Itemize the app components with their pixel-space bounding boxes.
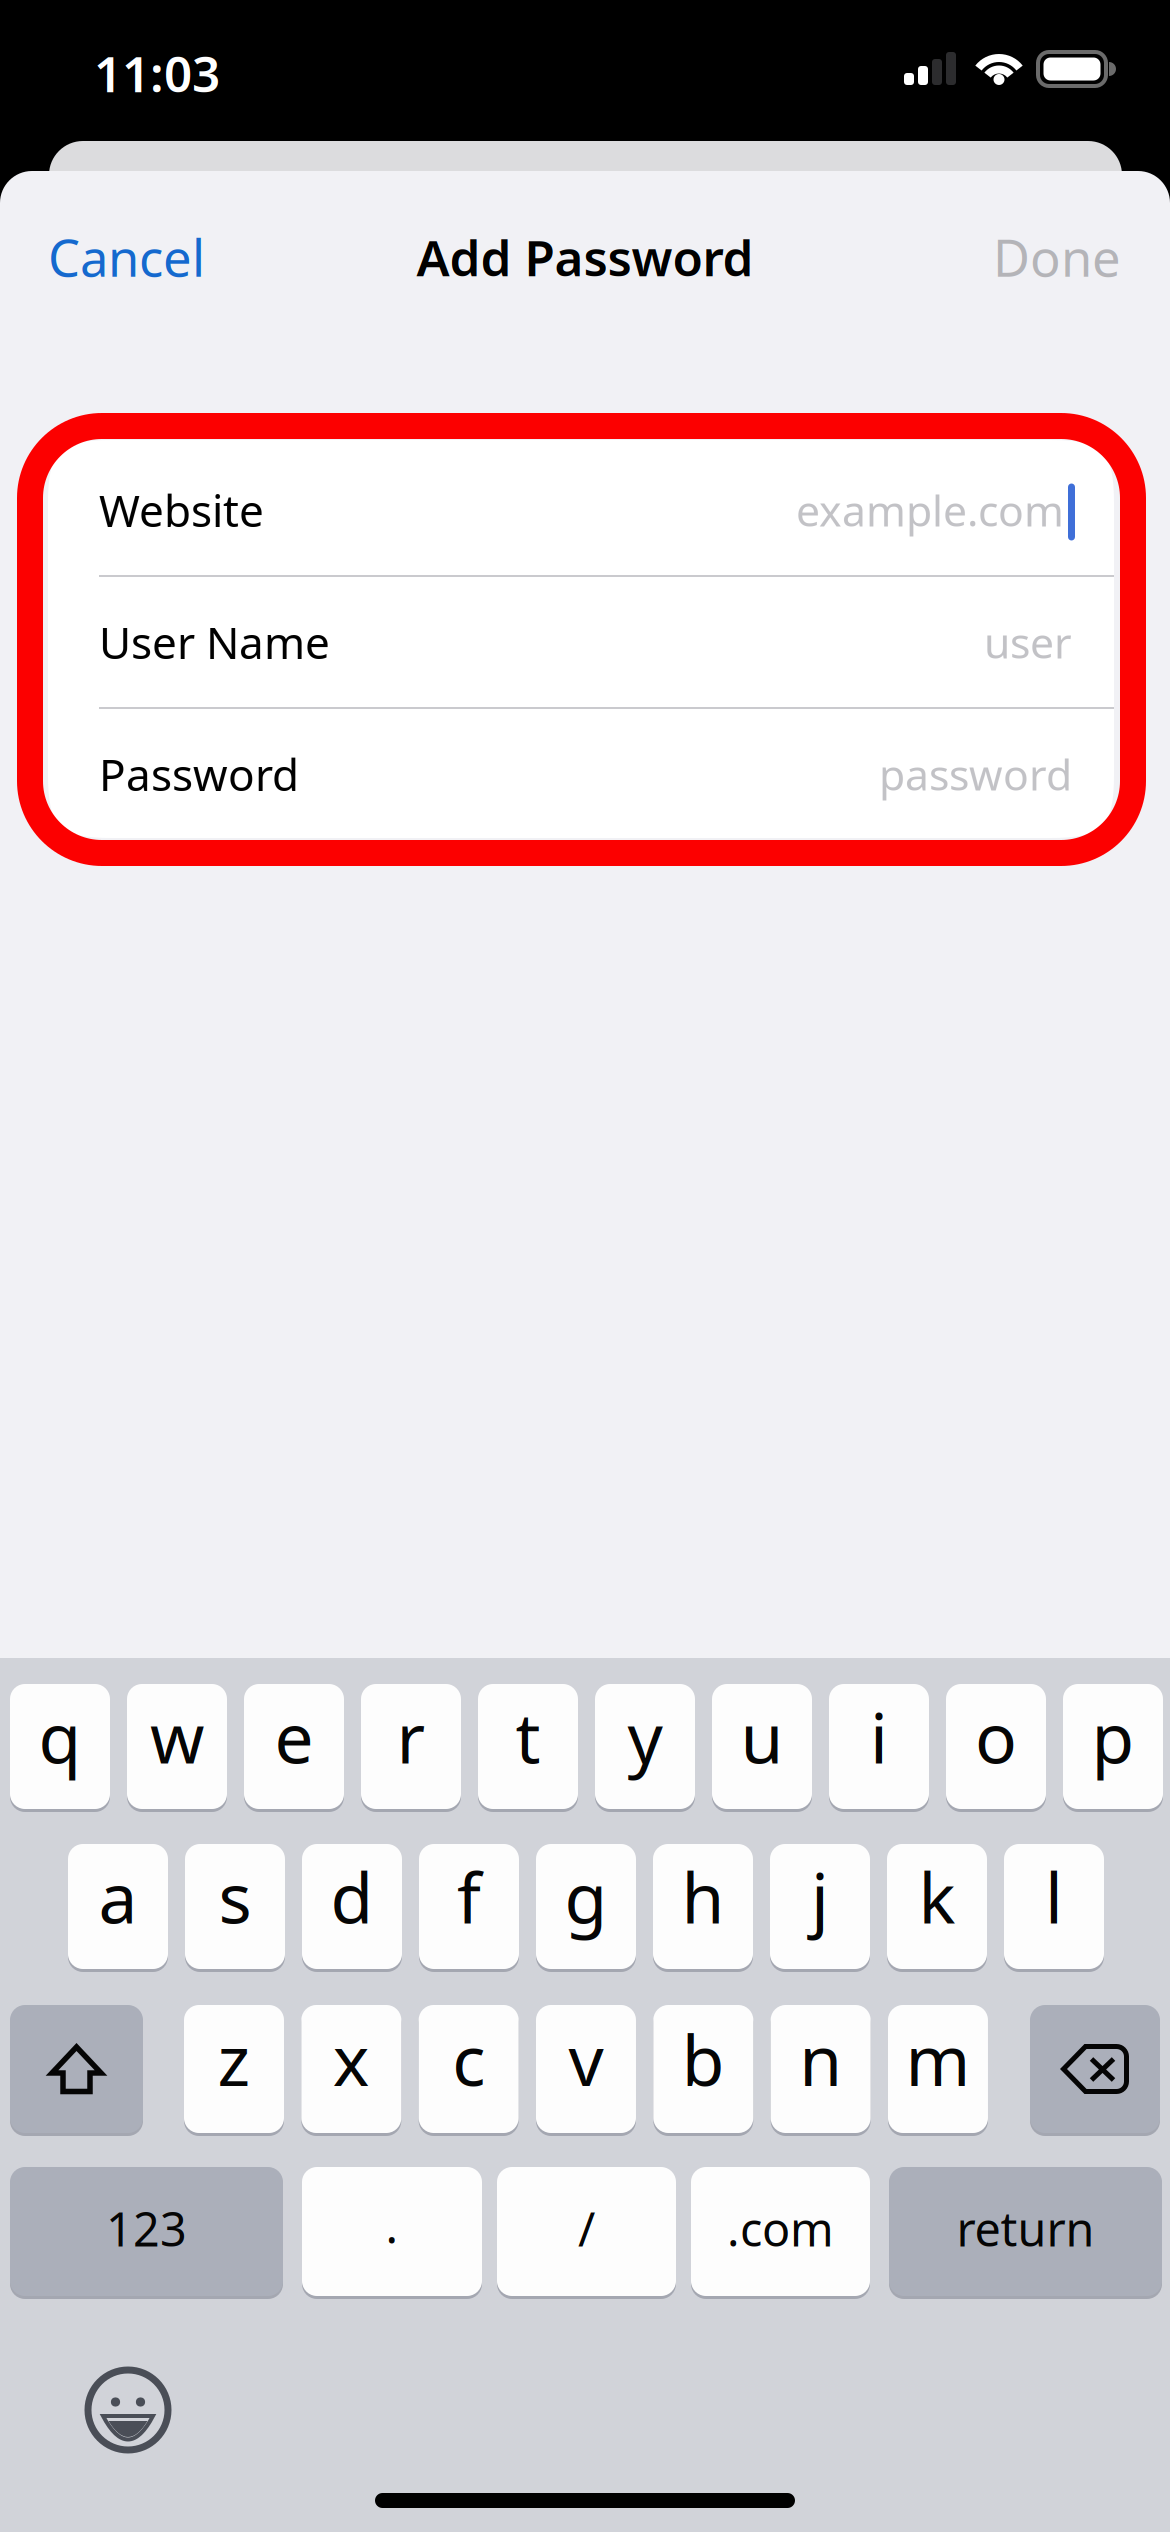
button[interactable]: n: [771, 2005, 871, 2136]
button[interactable]: z: [184, 2005, 284, 2136]
staticText: v: [568, 2013, 603, 2105]
staticText: User Name: [99, 613, 330, 671]
staticText: r: [396, 1690, 425, 1783]
staticText: l: [1045, 1850, 1063, 1943]
button[interactable]: Done: [901, 219, 1121, 295]
button[interactable]: v: [536, 2005, 636, 2136]
button[interactable]: .: [302, 2167, 482, 2299]
button[interactable]: y: [595, 1684, 695, 1812]
button[interactable]: t: [478, 1684, 578, 1812]
staticText: 11:03: [94, 40, 220, 106]
button[interactable]: Website: [48, 444, 1114, 576]
staticText: Add Password: [416, 224, 753, 290]
button[interactable]: f: [419, 1844, 519, 1972]
button[interactable]: s: [185, 1844, 285, 1972]
staticText: f: [457, 1850, 481, 1943]
button[interactable]: m: [888, 2005, 988, 2136]
button[interactable]: x: [301, 2005, 401, 2136]
button[interactable]: g: [536, 1844, 636, 1972]
button[interactable]: k: [887, 1844, 987, 1972]
staticText: user: [984, 614, 1072, 670]
staticText: d: [330, 1850, 373, 1943]
staticText: Cancel: [48, 223, 205, 291]
staticText: j: [811, 1850, 829, 1943]
button[interactable]: Password: [48, 708, 1114, 840]
staticText: h: [681, 1850, 724, 1943]
staticText: /: [578, 2197, 595, 2259]
staticText: a: [98, 1850, 137, 1943]
staticText: m: [905, 2013, 970, 2105]
staticText: w: [150, 1690, 204, 1783]
button[interactable]: .com: [691, 2167, 870, 2299]
staticText: Password: [99, 745, 299, 803]
staticText: b: [682, 2013, 725, 2105]
button[interactable]: Emoji keyboard: [88, 2370, 168, 2450]
staticText: g: [564, 1850, 607, 1943]
staticText: .: [385, 2194, 398, 2256]
staticText: Website: [99, 481, 264, 539]
button[interactable]: a: [68, 1844, 168, 1972]
button[interactable]: o: [946, 1684, 1046, 1812]
staticText: s: [218, 1850, 251, 1943]
button[interactable]: return: [889, 2167, 1162, 2299]
button[interactable]: b: [653, 2005, 753, 2136]
staticText: p: [1091, 1690, 1134, 1783]
staticText: .com: [727, 2197, 834, 2259]
button[interactable]: c: [419, 2005, 519, 2136]
staticText: k: [918, 1850, 955, 1943]
button[interactable]: l: [1004, 1844, 1104, 1972]
button[interactable]: User Name: [48, 576, 1114, 708]
staticText: x: [333, 2013, 370, 2105]
button[interactable]: p: [1063, 1684, 1163, 1812]
button[interactable]: q: [10, 1684, 110, 1812]
staticText: n: [799, 2013, 842, 2105]
button[interactable]: Delete: [1030, 2005, 1160, 2136]
staticText: password: [879, 746, 1072, 802]
staticText: c: [452, 2013, 485, 2105]
button[interactable]: w: [127, 1684, 227, 1812]
staticText: return: [956, 2197, 1094, 2259]
staticText: y: [627, 1690, 662, 1783]
staticText: o: [975, 1690, 1017, 1783]
button[interactable]: /: [497, 2167, 676, 2299]
staticText: 123: [106, 2197, 187, 2259]
button[interactable]: h: [653, 1844, 753, 1972]
staticText: z: [217, 2013, 250, 2105]
staticText: Done: [993, 223, 1121, 291]
staticText: e: [274, 1690, 313, 1783]
staticText: t: [515, 1690, 540, 1783]
staticText: i: [870, 1690, 888, 1783]
button[interactable]: u: [712, 1684, 812, 1812]
staticText: u: [740, 1690, 783, 1783]
button[interactable]: i: [829, 1684, 929, 1812]
staticText: q: [38, 1690, 81, 1783]
button[interactable]: 123: [10, 2167, 283, 2299]
button[interactable]: e: [244, 1684, 344, 1812]
button[interactable]: Cancel: [48, 219, 268, 295]
button[interactable]: d: [302, 1844, 402, 1972]
button[interactable]: r: [361, 1684, 461, 1812]
staticText: example.com: [796, 482, 1064, 538]
button[interactable]: Shift: [10, 2005, 143, 2136]
button[interactable]: j: [770, 1844, 870, 1972]
